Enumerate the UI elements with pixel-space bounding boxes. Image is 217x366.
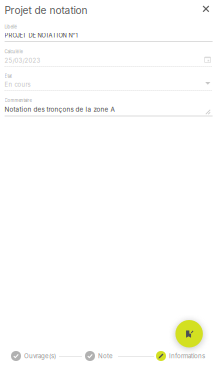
staticText: En cours bbox=[5, 81, 31, 88]
staticText: Projet de notation bbox=[5, 4, 88, 16]
staticText: Commentaire bbox=[5, 98, 32, 103]
staticText: Notation des tronçons de la zone A bbox=[5, 106, 115, 113]
staticText: Ouvrage(s) bbox=[24, 352, 56, 360]
staticText: État bbox=[5, 73, 12, 79]
button[interactable]: Changer l'état bbox=[203, 80, 212, 87]
staticText: PROJET DE NOTATION N°1 bbox=[5, 32, 78, 39]
button[interactable]: Ajouter une note bbox=[175, 320, 203, 347]
button[interactable]: Ouvrage(s) bbox=[11, 351, 56, 361]
staticText: Libellé bbox=[5, 24, 17, 30]
button[interactable]: Informations bbox=[156, 351, 205, 361]
button[interactable]: Choisir une date bbox=[203, 55, 213, 65]
button[interactable]: Fermer bbox=[199, 1, 213, 16]
staticText: Informations bbox=[169, 352, 205, 360]
button[interactable]: Note bbox=[85, 351, 113, 361]
staticText: 25/03/2023 bbox=[5, 57, 41, 64]
staticText: Note bbox=[98, 352, 113, 360]
staticText: Calculé le bbox=[5, 49, 23, 54]
